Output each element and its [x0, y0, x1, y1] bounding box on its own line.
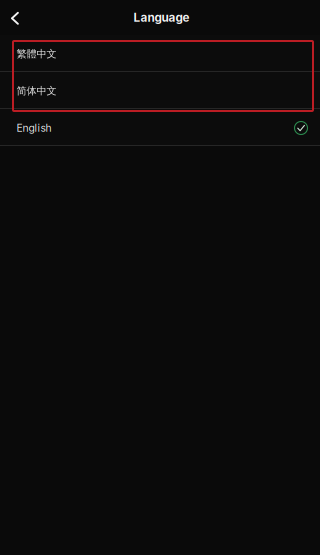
staticText: 简体中文 [17, 85, 57, 97]
staticText: 繁體中文 [17, 48, 57, 60]
button[interactable]: 繁體中文 [0, 35, 320, 72]
staticText: Language [133, 10, 189, 25]
button[interactable]: Back [0, 0, 30, 35]
button[interactable]: 简体中文 [0, 72, 320, 109]
button[interactable]: English [0, 109, 320, 146]
staticText: English [17, 122, 52, 134]
